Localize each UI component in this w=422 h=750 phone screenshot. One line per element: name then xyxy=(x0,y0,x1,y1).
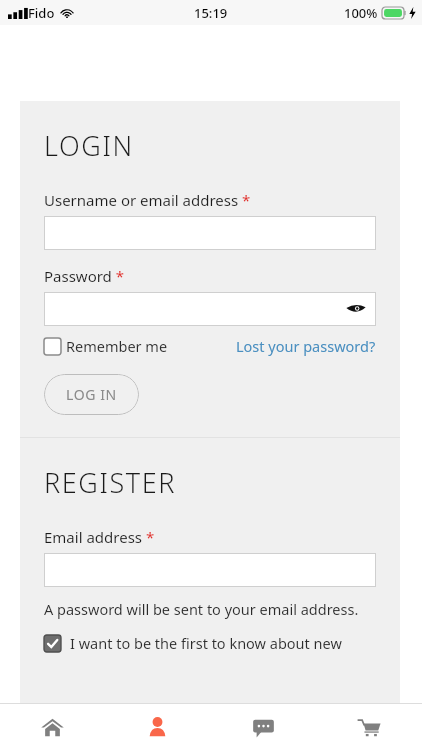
button[interactable]: Account xyxy=(105,704,210,750)
button[interactable]: Messages xyxy=(210,704,316,750)
staticText: Lost your password? xyxy=(236,336,376,356)
button[interactable]: Lost your password? xyxy=(236,336,376,356)
staticText: LOGIN xyxy=(44,127,134,164)
staticText: REGISTER xyxy=(44,464,177,501)
button[interactable]: I want to be the first to know about new xyxy=(44,633,376,653)
staticText: A password will be sent to your email ad… xyxy=(44,599,359,619)
button[interactable]: Home xyxy=(0,704,105,750)
button[interactable]: Cart xyxy=(316,704,422,750)
staticText: Fido xyxy=(28,4,55,22)
button[interactable]: Show password xyxy=(346,302,366,316)
staticText: I want to be the first to know about new xyxy=(70,633,342,653)
staticText: 100% xyxy=(344,4,378,22)
button[interactable]: Remember me xyxy=(44,336,168,356)
button[interactable] xyxy=(44,216,376,250)
staticText: LOG IN xyxy=(66,385,117,404)
staticText: 15:19 xyxy=(194,4,228,22)
button[interactable] xyxy=(44,635,61,652)
button[interactable] xyxy=(44,338,61,355)
button[interactable] xyxy=(44,553,376,587)
staticText: Username or email address * xyxy=(44,190,251,210)
staticText: Email address * xyxy=(44,527,155,547)
button[interactable]: Show password xyxy=(44,292,376,326)
staticText: Remember me xyxy=(66,336,168,356)
button[interactable]: LOG IN xyxy=(44,374,139,415)
staticText: Password * xyxy=(44,266,125,286)
